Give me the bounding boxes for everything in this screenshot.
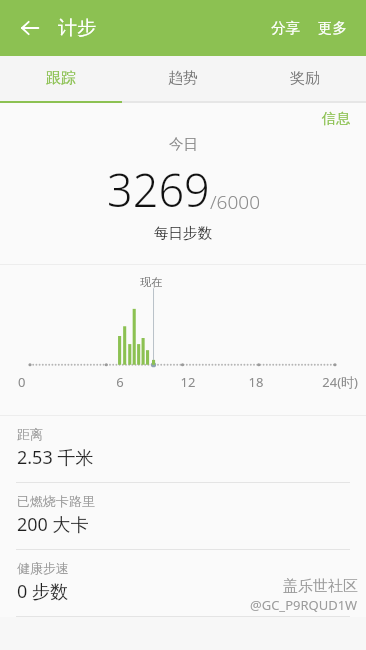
staticText: 健康步速 bbox=[17, 560, 69, 576]
staticText: 6 bbox=[86, 373, 154, 391]
staticText: 已燃烧卡路里 bbox=[17, 493, 95, 509]
button[interactable]: Back bbox=[8, 6, 52, 50]
button[interactable]: 跟踪 bbox=[0, 56, 122, 101]
staticText: @GC_P9RQUD1W bbox=[250, 596, 358, 614]
staticText: 24(时) bbox=[290, 373, 358, 391]
staticText: 奖励 bbox=[290, 69, 320, 88]
staticText: 更多 bbox=[318, 19, 347, 37]
button[interactable]: 更多 bbox=[309, 11, 356, 45]
button[interactable]: 信息 bbox=[318, 107, 354, 131]
staticText: 计步 bbox=[58, 16, 96, 40]
staticText: 2.53 千米 bbox=[17, 445, 94, 470]
staticText: 信息 bbox=[322, 110, 350, 128]
staticText: 跟踪 bbox=[46, 69, 76, 88]
button[interactable]: 健康步速 bbox=[0, 550, 366, 616]
staticText: 分享 bbox=[271, 19, 300, 37]
staticText: 盖乐世社区 bbox=[283, 577, 358, 596]
staticText: 18 bbox=[222, 373, 290, 391]
staticText: /6000 bbox=[210, 189, 260, 215]
button[interactable]: 奖励 bbox=[244, 56, 366, 101]
staticText: 今日 bbox=[169, 135, 198, 153]
staticText: 0 步数 bbox=[17, 579, 68, 604]
button[interactable]: 已燃烧卡路里 bbox=[0, 483, 366, 549]
staticText: 每日步数 bbox=[154, 224, 212, 242]
staticText: 趋势 bbox=[168, 69, 198, 88]
staticText: 200 大卡 bbox=[17, 512, 89, 537]
staticText: 距离 bbox=[17, 426, 43, 442]
button[interactable]: 距离 bbox=[0, 416, 366, 482]
staticText: 12 bbox=[154, 373, 222, 391]
staticText: 现在 bbox=[140, 275, 162, 289]
button[interactable]: 分享 bbox=[262, 11, 309, 45]
staticText: 0 bbox=[18, 373, 86, 391]
button[interactable]: 计步 bbox=[58, 16, 96, 40]
button[interactable]: 趋势 bbox=[122, 56, 244, 101]
staticText: 3269 bbox=[107, 159, 210, 220]
